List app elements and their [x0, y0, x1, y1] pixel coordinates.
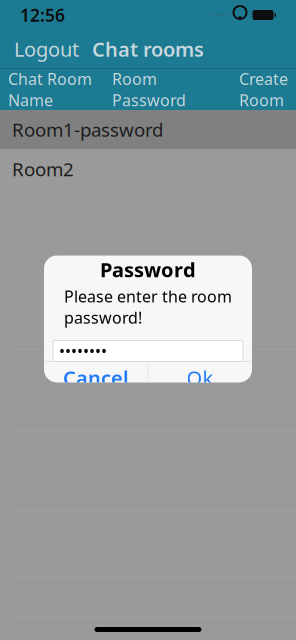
button[interactable]: Logout: [0, 28, 93, 70]
staticText: Password: [100, 256, 196, 283]
staticText: ••••••••: [59, 340, 107, 361]
staticText: Room1-password: [12, 117, 163, 142]
staticText: Create Room: [239, 68, 288, 111]
staticText: Logout: [14, 36, 79, 62]
staticText: Ok: [186, 364, 213, 391]
staticText: 12:56: [20, 3, 65, 26]
staticText: Cancel: [63, 364, 129, 391]
staticText: Room Password: [112, 68, 186, 111]
button[interactable]: Room2: [0, 149, 296, 188]
button[interactable]: Create Room: [239, 58, 296, 121]
button[interactable]: Cancel: [44, 362, 148, 394]
staticText: Chat Room Name: [8, 68, 92, 111]
button[interactable]: Ok: [148, 362, 252, 394]
staticText: Room2: [12, 157, 74, 181]
staticText: Chat rooms: [92, 36, 204, 62]
staticText: Please enter the room password!: [64, 286, 232, 328]
button[interactable]: Room Password: [112, 58, 212, 121]
button[interactable]: Room1-password: [0, 110, 296, 149]
button[interactable]: Chat Room Name: [0, 58, 112, 121]
